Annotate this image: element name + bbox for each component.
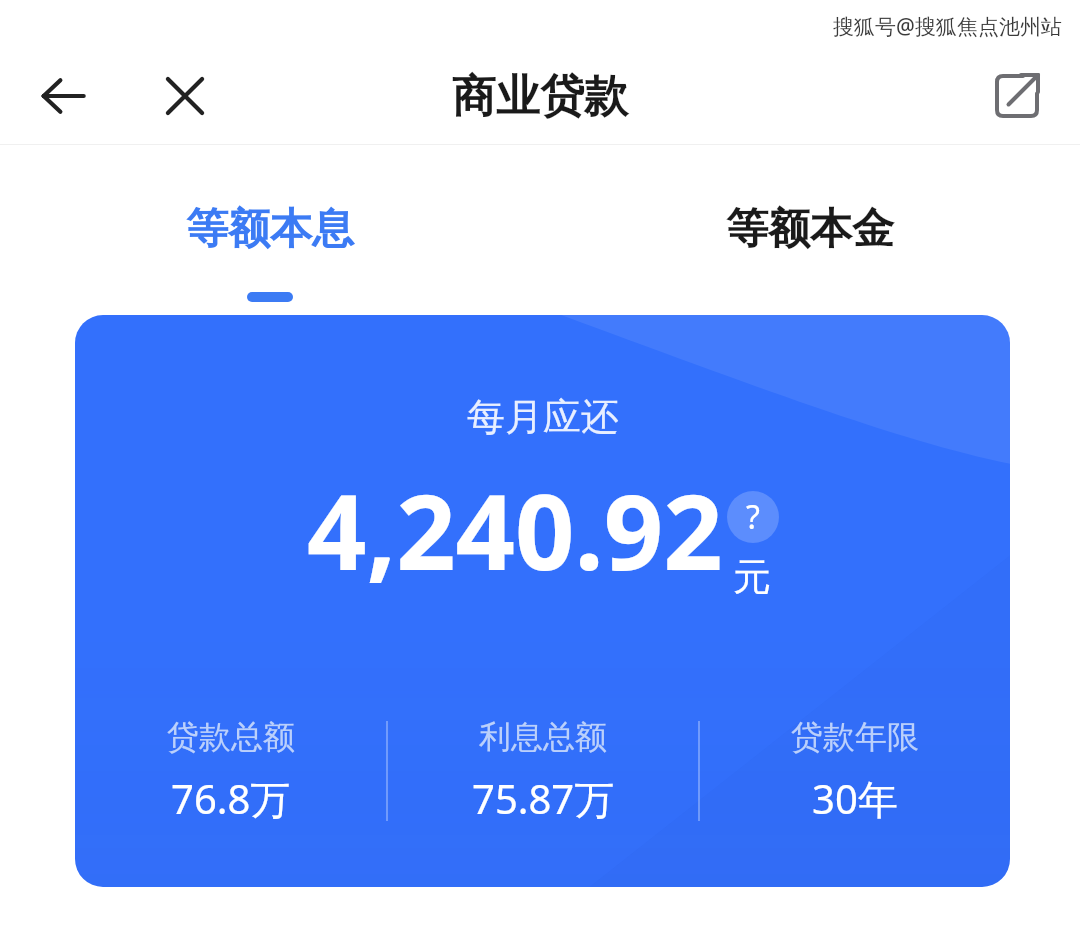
button[interactable]: 贷款年限 [700, 717, 1010, 826]
staticText: 每月应还 [467, 393, 619, 441]
staticText: 元 [733, 553, 771, 601]
button[interactable]: Share [982, 61, 1052, 131]
staticText: 利息总额 [479, 717, 607, 757]
staticText: 76.8万 [171, 771, 291, 826]
button[interactable]: 等额本息 [0, 145, 540, 315]
staticText: 贷款总额 [167, 717, 295, 757]
button[interactable]: Help [727, 491, 779, 543]
button[interactable]: Close [152, 63, 218, 129]
staticText: ? [746, 495, 760, 539]
staticText: 搜狐号@搜狐焦点池州站 [833, 12, 1062, 41]
staticText: 30年 [812, 771, 898, 826]
staticText: 等额本金 [726, 203, 894, 256]
staticText: 等额本息 [186, 203, 354, 256]
staticText: 75.87万 [472, 771, 615, 826]
button[interactable]: 贷款总额 [75, 717, 386, 826]
button[interactable]: Back [30, 63, 96, 129]
staticText: 贷款年限 [791, 717, 919, 757]
staticText: 4,240.92 [307, 459, 723, 601]
button[interactable]: 利息总额 [388, 717, 698, 826]
staticText: 商业贷款 [452, 69, 628, 124]
button[interactable]: 等额本金 [540, 145, 1080, 315]
button[interactable]: 每月应还 [75, 315, 1010, 887]
